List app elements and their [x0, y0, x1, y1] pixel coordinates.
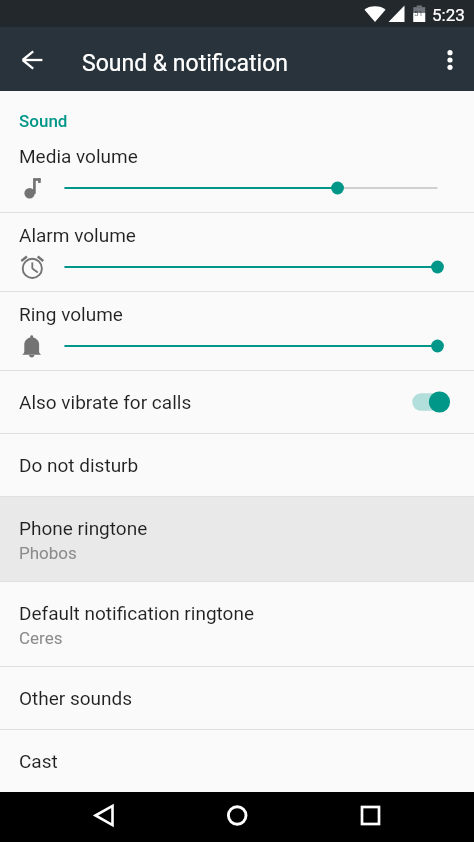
staticText: 51: [414, 9, 423, 18]
button[interactable]: Also vibrate for calls: [0, 371, 474, 433]
staticText: Sound & notification: [82, 50, 289, 77]
button[interactable]: Back: [0, 30, 60, 90]
staticText: Other sounds: [19, 687, 457, 709]
staticText: Ceres: [19, 628, 63, 648]
button[interactable]: Back: [71, 792, 135, 842]
staticText: Also vibrate for calls: [19, 391, 413, 413]
button[interactable]: Ring volume: [0, 292, 474, 370]
button[interactable]: Do not disturb: [0, 434, 474, 496]
button[interactable]: Other sounds: [0, 667, 474, 729]
button[interactable]: Media volume: [0, 134, 474, 212]
staticText: Phobos: [19, 543, 77, 563]
staticText: Media volume: [19, 145, 138, 167]
staticText: Ring volume: [19, 303, 123, 325]
staticText: Phone ringtone: [19, 517, 148, 539]
button[interactable]: Home: [205, 792, 269, 842]
button[interactable]: More options: [426, 36, 474, 84]
staticText: 5:23: [432, 5, 465, 25]
staticText: Default notification ringtone: [19, 602, 255, 624]
staticText: Alarm volume: [19, 224, 136, 246]
button[interactable]: Recents: [340, 792, 404, 842]
staticText: Sound: [19, 111, 68, 131]
button[interactable]: Cast: [0, 730, 474, 792]
staticText: Cast: [19, 750, 457, 772]
button[interactable]: Default notification ringtone: [0, 582, 474, 666]
button[interactable]: Phone ringtone: [0, 497, 474, 581]
button[interactable]: Alarm volume: [0, 213, 474, 291]
staticText: Do not disturb: [19, 454, 457, 476]
